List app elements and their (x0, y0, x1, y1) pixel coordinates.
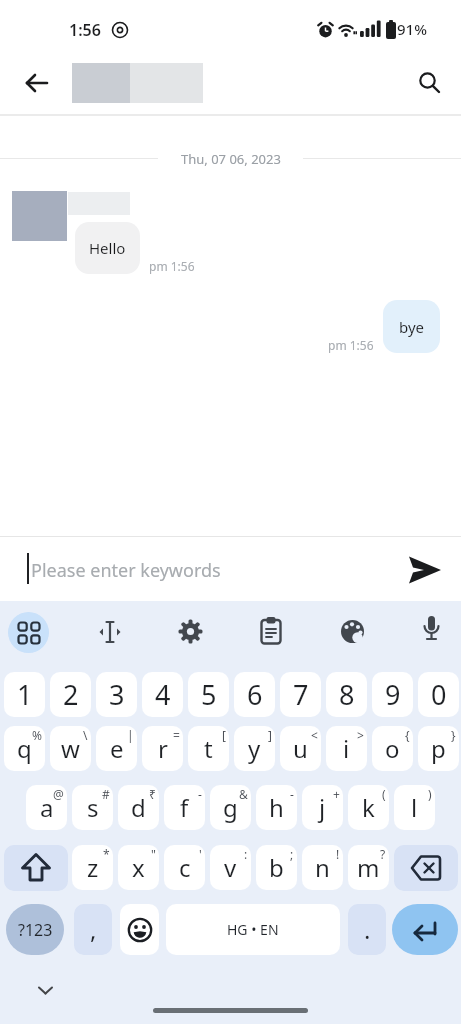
staticText: ? (380, 846, 386, 862)
button[interactable]: 4 (142, 672, 183, 717)
staticText: ] (268, 727, 272, 743)
button[interactable]: x (118, 845, 159, 890)
staticText: pm 1:56 (149, 258, 195, 274)
staticText: ' (199, 846, 202, 862)
button[interactable]: ?123 (6, 904, 64, 955)
button[interactable]: o (372, 726, 413, 771)
button[interactable]: 9 (372, 672, 413, 717)
button[interactable]: 1 (4, 672, 45, 717)
staticText: w (61, 732, 80, 765)
button[interactable]: 2 (50, 672, 91, 717)
button[interactable]: c (164, 845, 205, 890)
staticText: i (343, 732, 350, 765)
staticText: u (293, 732, 308, 765)
staticText: : (244, 846, 248, 862)
staticText: o (385, 732, 400, 765)
staticText: ₹ (149, 786, 156, 802)
staticText: ?123 (18, 919, 53, 941)
staticText: s (87, 791, 99, 824)
staticText: HG • EN (227, 920, 279, 939)
staticText: b (269, 851, 284, 884)
button[interactable]: k (348, 785, 389, 830)
staticText: < (311, 727, 318, 743)
staticText: 91% (397, 19, 427, 39)
staticText: pm 1:56 (328, 337, 374, 353)
staticText: x (132, 851, 145, 884)
button[interactable] (394, 845, 458, 891)
button[interactable]: Hello (75, 222, 140, 274)
button[interactable]: n (302, 845, 343, 890)
button[interactable]: b (256, 845, 297, 890)
button[interactable]: r (142, 726, 183, 771)
staticText: f (180, 791, 189, 824)
button[interactable]: 3 (96, 672, 137, 717)
staticText: . (364, 913, 371, 946)
button[interactable] (25, 71, 49, 95)
staticText: \ (83, 727, 88, 743)
staticText: % (32, 727, 42, 743)
button[interactable] (409, 555, 442, 585)
button[interactable] (37, 985, 54, 996)
button[interactable]: 5 (188, 672, 229, 717)
staticText: 7 (293, 676, 309, 713)
button[interactable]: a (26, 785, 67, 830)
button[interactable]: s (72, 785, 113, 830)
button[interactable]: e (96, 726, 137, 771)
button[interactable] (177, 618, 204, 645)
button[interactable]: w (50, 726, 91, 771)
staticText: q (17, 732, 32, 765)
button[interactable]: HG • EN (166, 904, 340, 955)
staticText: t (204, 732, 213, 765)
button[interactable]: g (210, 785, 251, 830)
staticText: r (158, 732, 168, 765)
staticText: 1:56 (69, 19, 101, 41)
button[interactable]: 8 (326, 672, 367, 717)
button[interactable]: h (256, 785, 297, 830)
staticText: { (405, 727, 410, 743)
staticText: z (87, 851, 99, 884)
staticText: h (269, 791, 284, 824)
button[interactable] (418, 71, 442, 95)
staticText: 5 (201, 676, 217, 713)
staticText: a (40, 791, 54, 824)
staticText: 1 (17, 676, 33, 713)
button[interactable] (423, 615, 440, 646)
staticText: 6 (247, 676, 263, 713)
button[interactable]: 7 (280, 672, 321, 717)
button[interactable] (120, 904, 159, 955)
button[interactable]: l (394, 785, 435, 830)
button[interactable]: y (234, 726, 275, 771)
button[interactable] (339, 618, 366, 645)
button[interactable]: f (164, 785, 205, 830)
button[interactable] (4, 845, 68, 891)
button[interactable]: 0 (418, 672, 459, 717)
button[interactable]: v (210, 845, 251, 890)
staticText: | (127, 727, 134, 743)
button[interactable] (260, 617, 282, 645)
button[interactable]: z (72, 845, 113, 890)
button[interactable]: q (4, 726, 45, 771)
staticText: j (319, 791, 326, 824)
button[interactable]: j (302, 785, 343, 830)
staticText: Hello (89, 238, 126, 258)
staticText: , (90, 913, 97, 946)
button[interactable] (95, 618, 125, 648)
button[interactable]: m (348, 845, 389, 890)
button[interactable]: , (74, 904, 112, 955)
button[interactable]: 6 (234, 672, 275, 717)
button[interactable]: . (348, 904, 386, 955)
button[interactable] (392, 904, 458, 955)
button[interactable]: t (188, 726, 229, 771)
button[interactable]: d (118, 785, 159, 830)
button[interactable]: u (280, 726, 321, 771)
staticText: k (362, 791, 375, 824)
staticText: c (179, 851, 191, 884)
staticText: v (224, 851, 237, 884)
button[interactable]: i (326, 726, 367, 771)
staticText: " (151, 846, 156, 862)
staticText: # (102, 786, 110, 802)
button[interactable] (8, 612, 49, 653)
button[interactable]: p (418, 726, 459, 771)
staticText: ! (336, 846, 340, 862)
button[interactable]: bye (383, 300, 440, 353)
